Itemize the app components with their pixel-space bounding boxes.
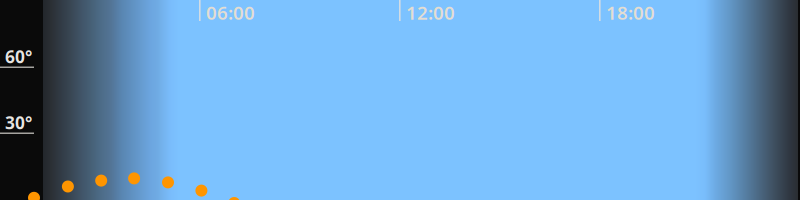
staticText: 60° xyxy=(5,45,32,68)
staticText: 18:00 xyxy=(606,0,655,25)
staticText: 12:00 xyxy=(406,0,455,25)
staticText: 30° xyxy=(5,111,32,134)
staticText: 06:00 xyxy=(206,0,255,25)
